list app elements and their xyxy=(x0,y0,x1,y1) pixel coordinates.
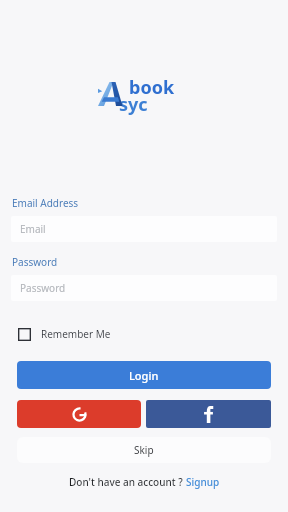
staticText: syc xyxy=(119,92,148,117)
staticText: Email xyxy=(20,222,46,236)
staticText: Remember Me xyxy=(41,327,111,341)
staticText: Password xyxy=(12,255,58,269)
staticText: Signup xyxy=(186,475,220,489)
staticText: Don't have an account ? xyxy=(69,475,186,489)
button[interactable]: Email xyxy=(11,216,277,242)
button[interactable]: Password xyxy=(11,275,277,301)
button[interactable]: Sign in with Facebook xyxy=(146,400,271,428)
button[interactable]: Signup xyxy=(186,475,220,489)
staticText: Email Address xyxy=(12,196,79,210)
staticText: Login xyxy=(129,368,159,383)
button[interactable]: Login xyxy=(17,361,271,389)
button[interactable]: Remember Me xyxy=(16,323,113,345)
staticText: Skip xyxy=(134,443,154,457)
button[interactable]: Sign in with Google xyxy=(17,400,141,428)
staticText: book xyxy=(129,75,175,100)
button[interactable]: Skip xyxy=(17,437,271,463)
staticText: Password xyxy=(20,281,66,295)
